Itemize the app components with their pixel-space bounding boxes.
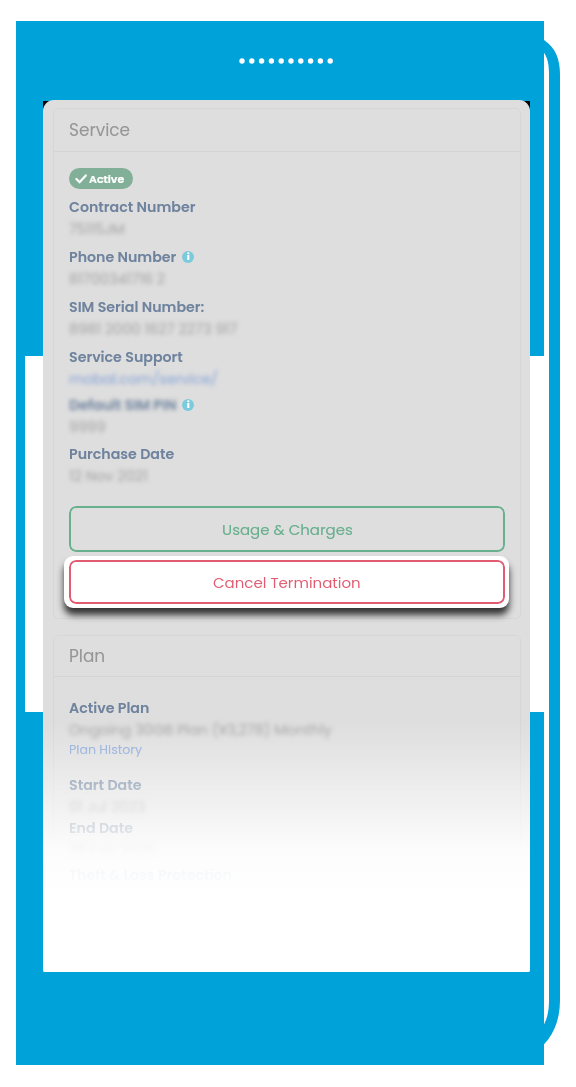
staticText: Contract Number — [69, 197, 196, 217]
staticText: i — [187, 251, 190, 263]
button[interactable]: Plan History — [69, 741, 143, 759]
button[interactable]: Information — [182, 399, 194, 411]
staticText: 8981 2000 1627 2273 917 — [69, 319, 238, 339]
staticText: End Date — [69, 818, 133, 838]
button[interactable]: Usage & Charges — [69, 506, 505, 552]
staticText: SIM Serial Number: — [69, 297, 205, 317]
staticText: Cancel Termination — [213, 572, 361, 593]
staticText: Default SIM PIN — [69, 395, 177, 415]
staticText: mobal.com/service/ — [69, 369, 218, 389]
staticText: Active — [89, 171, 125, 186]
button[interactable]: Cancel Termination — [69, 560, 505, 604]
staticText: Active Plan — [69, 698, 150, 718]
staticText: Phone Number — [69, 247, 177, 267]
staticText: 75115JM — [69, 219, 125, 239]
staticText: 9999 — [69, 417, 106, 437]
staticText: Plan — [69, 644, 106, 668]
staticText: 12 Nov 2021 — [69, 466, 148, 486]
staticText: Start Date — [69, 775, 142, 795]
button[interactable]: Active — [69, 168, 133, 189]
staticText: 81700341716 2 — [69, 269, 166, 289]
staticText: Usage & Charges — [222, 519, 353, 540]
staticText: i — [187, 399, 190, 411]
staticText: Purchase Date — [69, 444, 175, 464]
button[interactable]: Information — [182, 251, 194, 263]
staticText: Ongoing 30GB Plan (¥3,278) Monthly — [69, 720, 332, 740]
staticText: Service — [69, 118, 131, 142]
staticText: Service Support — [69, 347, 183, 367]
staticText: Plan History — [69, 741, 143, 759]
